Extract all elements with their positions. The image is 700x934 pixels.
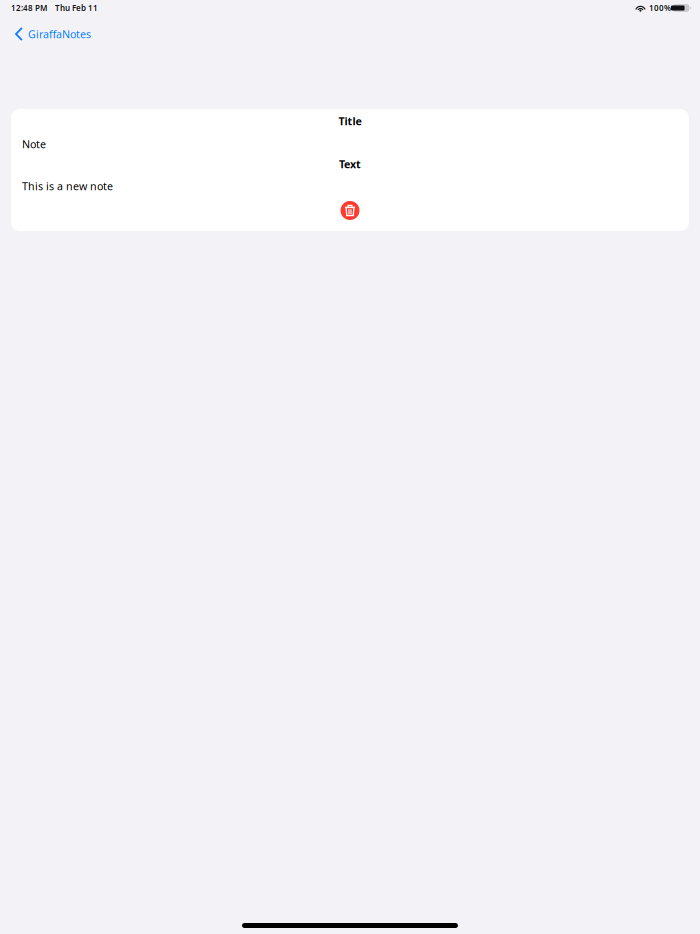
staticText: Title bbox=[338, 114, 361, 128]
staticText: Thu Feb 11 bbox=[55, 3, 98, 13]
button[interactable]: Delete note bbox=[340, 201, 359, 220]
staticText: GiraffaNotes bbox=[28, 27, 91, 41]
staticText: 100% bbox=[649, 3, 671, 13]
button[interactable]: GiraffaNotes bbox=[0, 23, 100, 45]
staticText: This is a new note bbox=[22, 179, 113, 193]
button[interactable]: Note bbox=[11, 133, 689, 155]
staticText: Text bbox=[339, 157, 361, 171]
button[interactable]: This is a new note bbox=[11, 175, 689, 197]
staticText: 12:48 PM bbox=[11, 3, 47, 13]
staticText: Note bbox=[22, 137, 46, 151]
